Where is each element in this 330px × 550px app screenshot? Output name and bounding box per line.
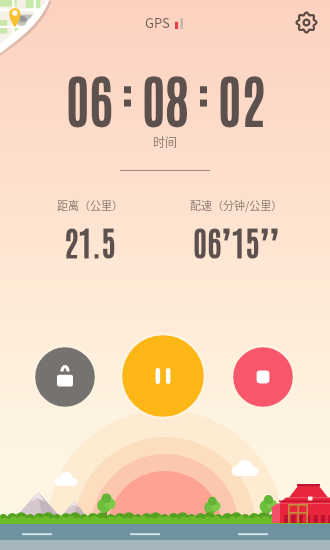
staticText: 距离（公里） [57,197,123,213]
button[interactable]: Map [0,0,56,56]
staticText: 配速（分钟/公里） [190,197,283,213]
staticText: GPS [145,13,170,32]
button[interactable]: Stop [231,345,295,409]
staticText: 02 [218,61,265,133]
staticText: 06 [66,61,113,133]
staticText: 06’15’’ [193,219,280,263]
button[interactable]: Pause [120,333,206,419]
staticText: 08 [142,61,189,133]
staticText: 时间 [153,133,178,150]
button[interactable]: Settings [291,7,321,37]
button[interactable]: Lock [33,345,97,409]
staticText: 21.5 [64,219,116,263]
